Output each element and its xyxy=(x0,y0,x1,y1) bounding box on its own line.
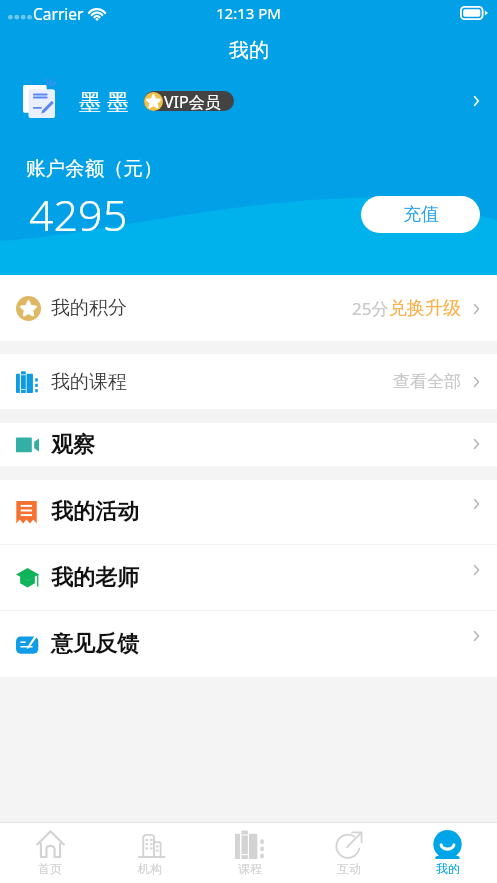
staticText: 我的老师 xyxy=(51,564,139,592)
button[interactable]: 墨 墨 xyxy=(0,72,497,130)
staticText: 我的 xyxy=(229,38,269,63)
staticText: 我的课程 xyxy=(51,370,127,394)
staticText: 25分 xyxy=(352,297,389,320)
button[interactable]: 意见反馈 xyxy=(0,611,497,677)
button[interactable]: 课程 xyxy=(200,823,299,883)
button[interactable]: 互动 xyxy=(299,823,398,883)
staticText: Carrier xyxy=(33,3,84,24)
staticText: 充值 xyxy=(403,203,439,226)
staticText: 互动 xyxy=(337,861,361,876)
staticText: 观察 xyxy=(51,431,95,459)
staticText: 4295 xyxy=(29,185,128,244)
staticText: 查看全部 xyxy=(393,371,461,392)
staticText: VIP会员 xyxy=(164,91,221,111)
staticText: 课程 xyxy=(238,861,262,876)
staticText: 账户余额（元） xyxy=(26,156,163,181)
button[interactable]: 观察 xyxy=(0,423,497,466)
button[interactable]: 我的课程 xyxy=(0,354,497,409)
button[interactable]: 我的 xyxy=(398,823,497,883)
staticText: 12:13 PM xyxy=(216,3,281,23)
button[interactable]: 充值 xyxy=(361,196,480,233)
button[interactable]: 我的老师 xyxy=(0,545,497,610)
button[interactable]: 我的积分 xyxy=(0,275,497,341)
button[interactable]: 首页 xyxy=(0,823,100,883)
staticText: 墨 墨 xyxy=(79,86,129,116)
staticText: 兑换升级 xyxy=(389,297,461,320)
staticText: 我的 xyxy=(436,861,460,876)
staticText: 意见反馈 xyxy=(51,630,139,658)
button[interactable]: 机构 xyxy=(100,823,200,883)
staticText: 机构 xyxy=(138,861,162,876)
staticText: 我的活动 xyxy=(51,498,139,526)
staticText: 我的积分 xyxy=(51,296,127,320)
staticText: 首页 xyxy=(38,861,62,876)
button[interactable]: 我的活动 xyxy=(0,480,497,544)
